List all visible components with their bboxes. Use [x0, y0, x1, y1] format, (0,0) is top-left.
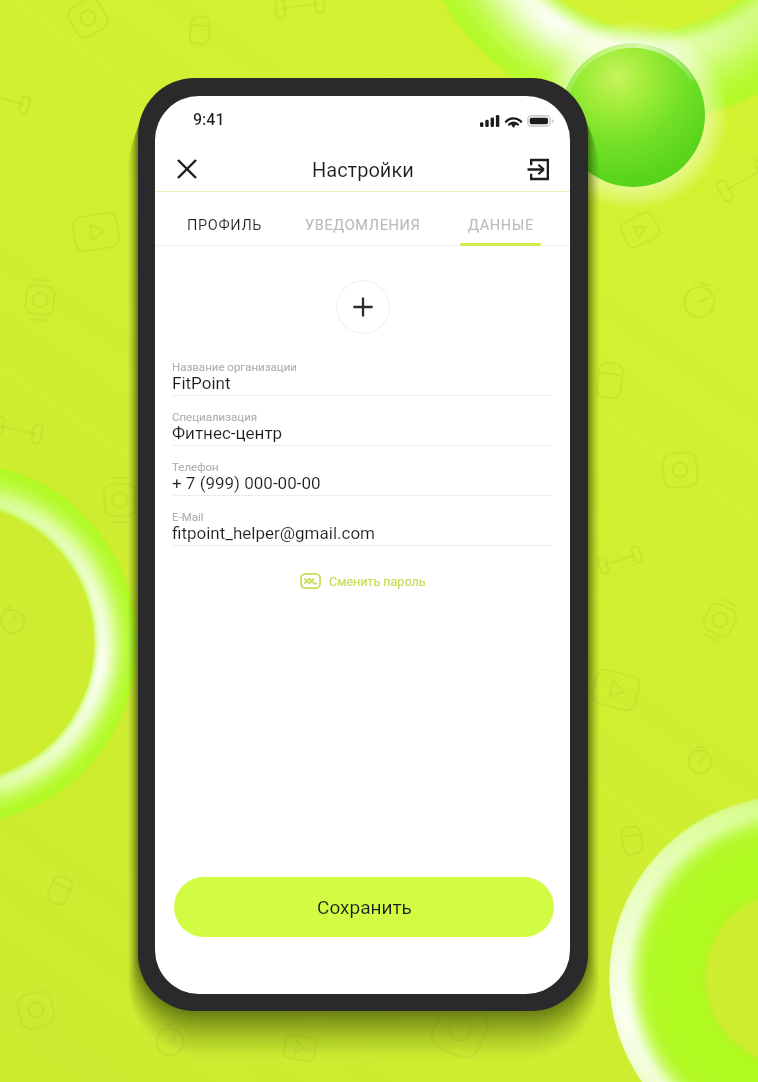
button[interactable]: Специализация — [155, 396, 570, 446]
button[interactable]: E-Mail — [155, 496, 570, 546]
button[interactable]: Сменить пароль — [294, 570, 432, 592]
staticText: fitpoint_helper@gmail.com — [172, 523, 376, 543]
staticText: ДАННЫЕ — [468, 217, 534, 234]
staticText: Сохранить — [317, 896, 412, 918]
staticText: Специализация — [172, 410, 258, 423]
staticText: FitPoint — [172, 373, 231, 393]
staticText: Телефон — [172, 460, 219, 473]
staticText: E-Mail — [172, 510, 204, 523]
staticText: Фитнес-центр — [172, 423, 283, 443]
button[interactable]: Log out — [517, 147, 561, 191]
staticText: Название организации — [172, 360, 297, 373]
button[interactable]: Название организации — [155, 346, 570, 396]
staticText: УВЕДОМЛЕНИЯ — [305, 217, 421, 234]
button[interactable]: УВЕДОМЛЕНИЯ — [294, 203, 432, 247]
staticText: Сменить пароль — [329, 574, 426, 589]
button[interactable]: Close — [165, 147, 209, 191]
button[interactable]: Add photo — [336, 280, 390, 334]
button[interactable]: Телефон — [155, 446, 570, 496]
staticText: Настройки — [312, 158, 414, 181]
staticText: ПРОФИЛЬ — [187, 217, 263, 234]
staticText: 9:41 — [193, 110, 225, 129]
button[interactable]: ПРОФИЛЬ — [156, 203, 294, 247]
button[interactable]: Сохранить — [174, 877, 554, 937]
button[interactable]: ДАННЫЕ — [432, 203, 570, 247]
staticText: + 7 (999) 000-00-00 — [172, 473, 321, 493]
